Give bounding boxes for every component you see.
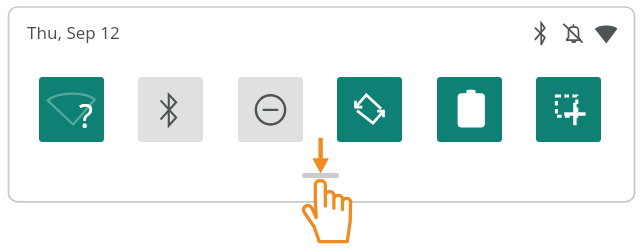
button[interactable]: Wi-Fi not connected [39, 77, 104, 142]
button[interactable]: Add tile [536, 77, 601, 142]
button[interactable]: Auto rotate [337, 77, 402, 142]
button[interactable]: Bluetooth [138, 77, 203, 142]
button[interactable]: Wi-Fi [594, 24, 619, 45]
button[interactable]: Battery saver [437, 77, 502, 142]
button[interactable]: Do not disturb [238, 77, 303, 142]
staticText: Thu, Sep 12 [27, 21, 120, 44]
button[interactable]: Bluetooth [532, 21, 548, 47]
staticText: ? [79, 94, 93, 138]
button[interactable]: Notifications silenced [562, 22, 584, 45]
button[interactable]: Expand quick settings [302, 173, 339, 178]
